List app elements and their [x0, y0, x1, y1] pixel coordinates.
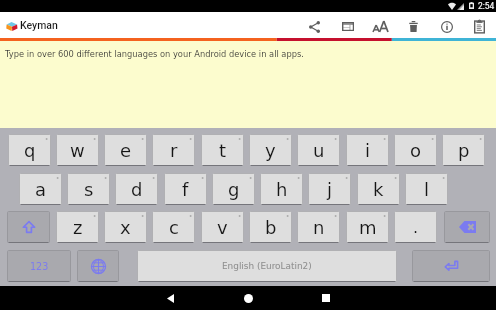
- button[interactable]: Enter: [412, 250, 490, 282]
- staticText: b: [265, 217, 277, 238]
- staticText: n: [313, 217, 325, 238]
- button[interactable]: p: [442, 134, 485, 166]
- button[interactable]: Shift: [7, 211, 50, 243]
- button[interactable]: Text size: [364, 12, 397, 41]
- button[interactable]: y: [249, 134, 292, 166]
- button[interactable]: q: [8, 134, 51, 166]
- staticText: a: [35, 179, 47, 200]
- staticText: y: [265, 140, 276, 161]
- button[interactable]: w: [56, 134, 99, 166]
- staticText: x: [120, 217, 131, 238]
- button[interactable]: t: [201, 134, 244, 166]
- staticText: j: [327, 179, 333, 200]
- button[interactable]: Home: [224, 286, 272, 310]
- button[interactable]: m: [346, 211, 389, 243]
- button[interactable]: e: [104, 134, 147, 166]
- staticText: Type in over 600 different languages on …: [5, 49, 304, 59]
- staticText: Keyman: [20, 19, 58, 31]
- staticText: v: [217, 217, 228, 238]
- staticText: .: [413, 218, 419, 237]
- staticText: d: [131, 179, 143, 200]
- button[interactable]: x: [104, 211, 147, 243]
- staticText: e: [120, 140, 132, 161]
- staticText: p: [458, 140, 470, 161]
- button[interactable]: h: [260, 173, 303, 205]
- staticText: 123: [30, 261, 49, 272]
- button[interactable]: z: [56, 211, 99, 243]
- button[interactable]: Delete: [397, 12, 430, 41]
- staticText: w: [70, 140, 85, 161]
- staticText: z: [73, 217, 83, 238]
- staticText: r: [170, 140, 178, 161]
- staticText: h: [276, 179, 288, 200]
- button[interactable]: .: [394, 211, 437, 243]
- button[interactable]: Back: [146, 286, 194, 310]
- staticText: 2:54: [478, 1, 495, 11]
- button[interactable]: r: [152, 134, 195, 166]
- staticText: q: [24, 140, 36, 161]
- staticText: c: [169, 217, 179, 238]
- button[interactable]: Recent apps: [302, 286, 350, 310]
- button[interactable]: l: [405, 173, 448, 205]
- button[interactable]: Space: [137, 250, 397, 282]
- staticText: u: [313, 140, 325, 161]
- button[interactable]: a: [19, 173, 62, 205]
- button[interactable]: Keyboard layout: [331, 12, 364, 41]
- button[interactable]: n: [297, 211, 340, 243]
- button[interactable]: u: [297, 134, 340, 166]
- button[interactable]: j: [308, 173, 351, 205]
- staticText: l: [424, 179, 430, 200]
- staticText: m: [359, 217, 377, 238]
- button[interactable]: Change language: [77, 250, 119, 282]
- staticText: o: [410, 140, 422, 161]
- button[interactable]: i: [346, 134, 389, 166]
- button[interactable]: o: [394, 134, 437, 166]
- button[interactable]: b: [249, 211, 292, 243]
- button[interactable]: s: [67, 173, 110, 205]
- button[interactable]: d: [115, 173, 158, 205]
- button[interactable]: Numbers: [7, 250, 71, 282]
- staticText: t: [219, 140, 227, 161]
- button[interactable]: c: [152, 211, 195, 243]
- button[interactable]: g: [212, 173, 255, 205]
- button[interactable]: Backspace: [444, 211, 490, 243]
- staticText: g: [228, 179, 240, 200]
- staticText: i: [365, 140, 371, 161]
- button[interactable]: f: [164, 173, 207, 205]
- button[interactable]: Info: [430, 12, 463, 41]
- button[interactable]: Clipboard: [463, 12, 496, 41]
- staticText: English (EuroLatin2): [222, 261, 312, 271]
- button[interactable]: Share: [298, 12, 331, 41]
- button[interactable]: k: [357, 173, 400, 205]
- staticText: k: [373, 179, 384, 200]
- staticText: s: [84, 179, 94, 200]
- staticText: f: [182, 179, 189, 200]
- button[interactable]: v: [201, 211, 244, 243]
